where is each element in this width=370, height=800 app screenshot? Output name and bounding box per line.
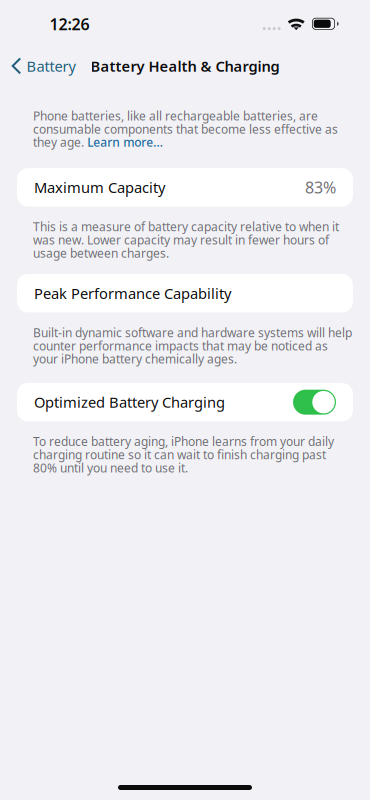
staticText: 83% (305, 177, 336, 198)
staticText: Peak Performance Capability (34, 283, 231, 303)
staticText: To reduce battery aging, iPhone learns f… (33, 433, 334, 476)
button[interactable]: Battery (0, 49, 81, 83)
button[interactable]: Optimized Battery Charging (0, 383, 370, 421)
staticText: Optimized Battery Charging (34, 392, 225, 412)
staticText: Battery (26, 56, 75, 76)
staticText: Built-in dynamic software and hardware s… (33, 324, 352, 367)
staticText: Phone batteries, like all rechargeable b… (33, 108, 338, 137)
staticText: Maximum Capacity (34, 178, 165, 197)
staticText: Learn more… (87, 134, 163, 150)
staticText: This is a measure of battery capacity re… (33, 219, 339, 261)
button[interactable]: Maximum Capacity (0, 168, 370, 207)
button[interactable]: Learn more… (87, 134, 163, 150)
staticText: Battery Health & Charging (90, 56, 279, 76)
staticText: they age. (33, 134, 84, 150)
staticText: 12:26 (49, 13, 89, 35)
button[interactable]: Peak Performance Capability (0, 274, 370, 312)
